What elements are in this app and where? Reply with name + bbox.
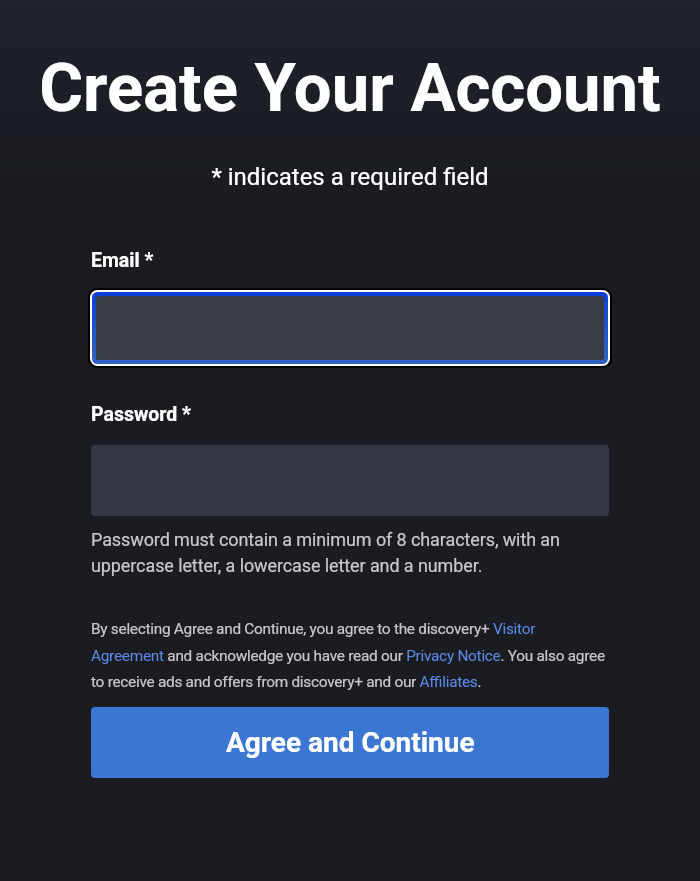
staticText: Create Your Account: [0, 49, 700, 128]
staticText: Email *: [91, 249, 154, 272]
staticText: * indicates a required field: [0, 163, 700, 191]
button[interactable]: Agree and Continue: [91, 707, 609, 778]
staticText: Password *: [91, 403, 191, 426]
staticText: Password must contain a minimum of 8 cha…: [91, 529, 609, 576]
button[interactable]: Email, required, text field: [91, 288, 609, 368]
staticText: Agree and Continue: [226, 726, 475, 759]
staticText: By selecting Agree and Continue, you agr…: [91, 620, 609, 691]
